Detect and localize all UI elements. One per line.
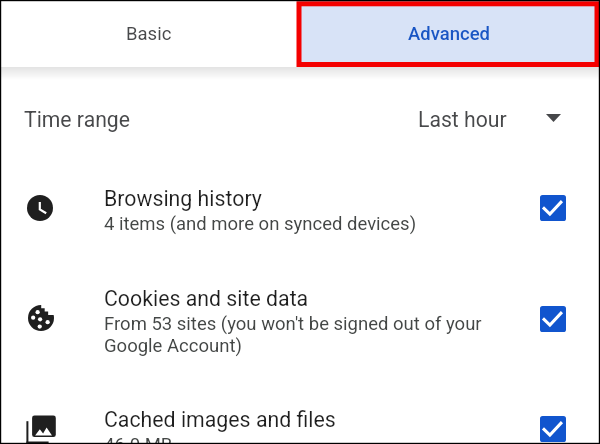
button[interactable] xyxy=(0,399,600,444)
button[interactable]: Checked xyxy=(540,416,566,442)
staticText: 46.0 MB xyxy=(104,434,173,444)
staticText: Cached images and files xyxy=(104,407,336,432)
button[interactable] xyxy=(0,178,600,238)
staticText: Basic xyxy=(126,23,172,45)
staticText: Time range xyxy=(24,107,130,132)
button[interactable]: Time range xyxy=(0,91,600,147)
staticText: Browsing history xyxy=(104,186,262,211)
button[interactable]: Basic xyxy=(0,0,297,67)
staticText: From 53 sites (you won't be signed out o… xyxy=(104,313,482,357)
button[interactable]: Advanced xyxy=(297,0,600,67)
button[interactable]: Checked xyxy=(540,195,566,221)
button[interactable]: Checked xyxy=(540,306,566,332)
button[interactable] xyxy=(0,278,600,360)
button[interactable]: Change time range xyxy=(534,102,573,134)
staticText: 4 items (and more on synced devices) xyxy=(104,213,417,235)
staticText: Advanced xyxy=(408,23,490,45)
staticText: Last hour xyxy=(418,107,507,132)
staticText: Cookies and site data xyxy=(104,286,309,311)
